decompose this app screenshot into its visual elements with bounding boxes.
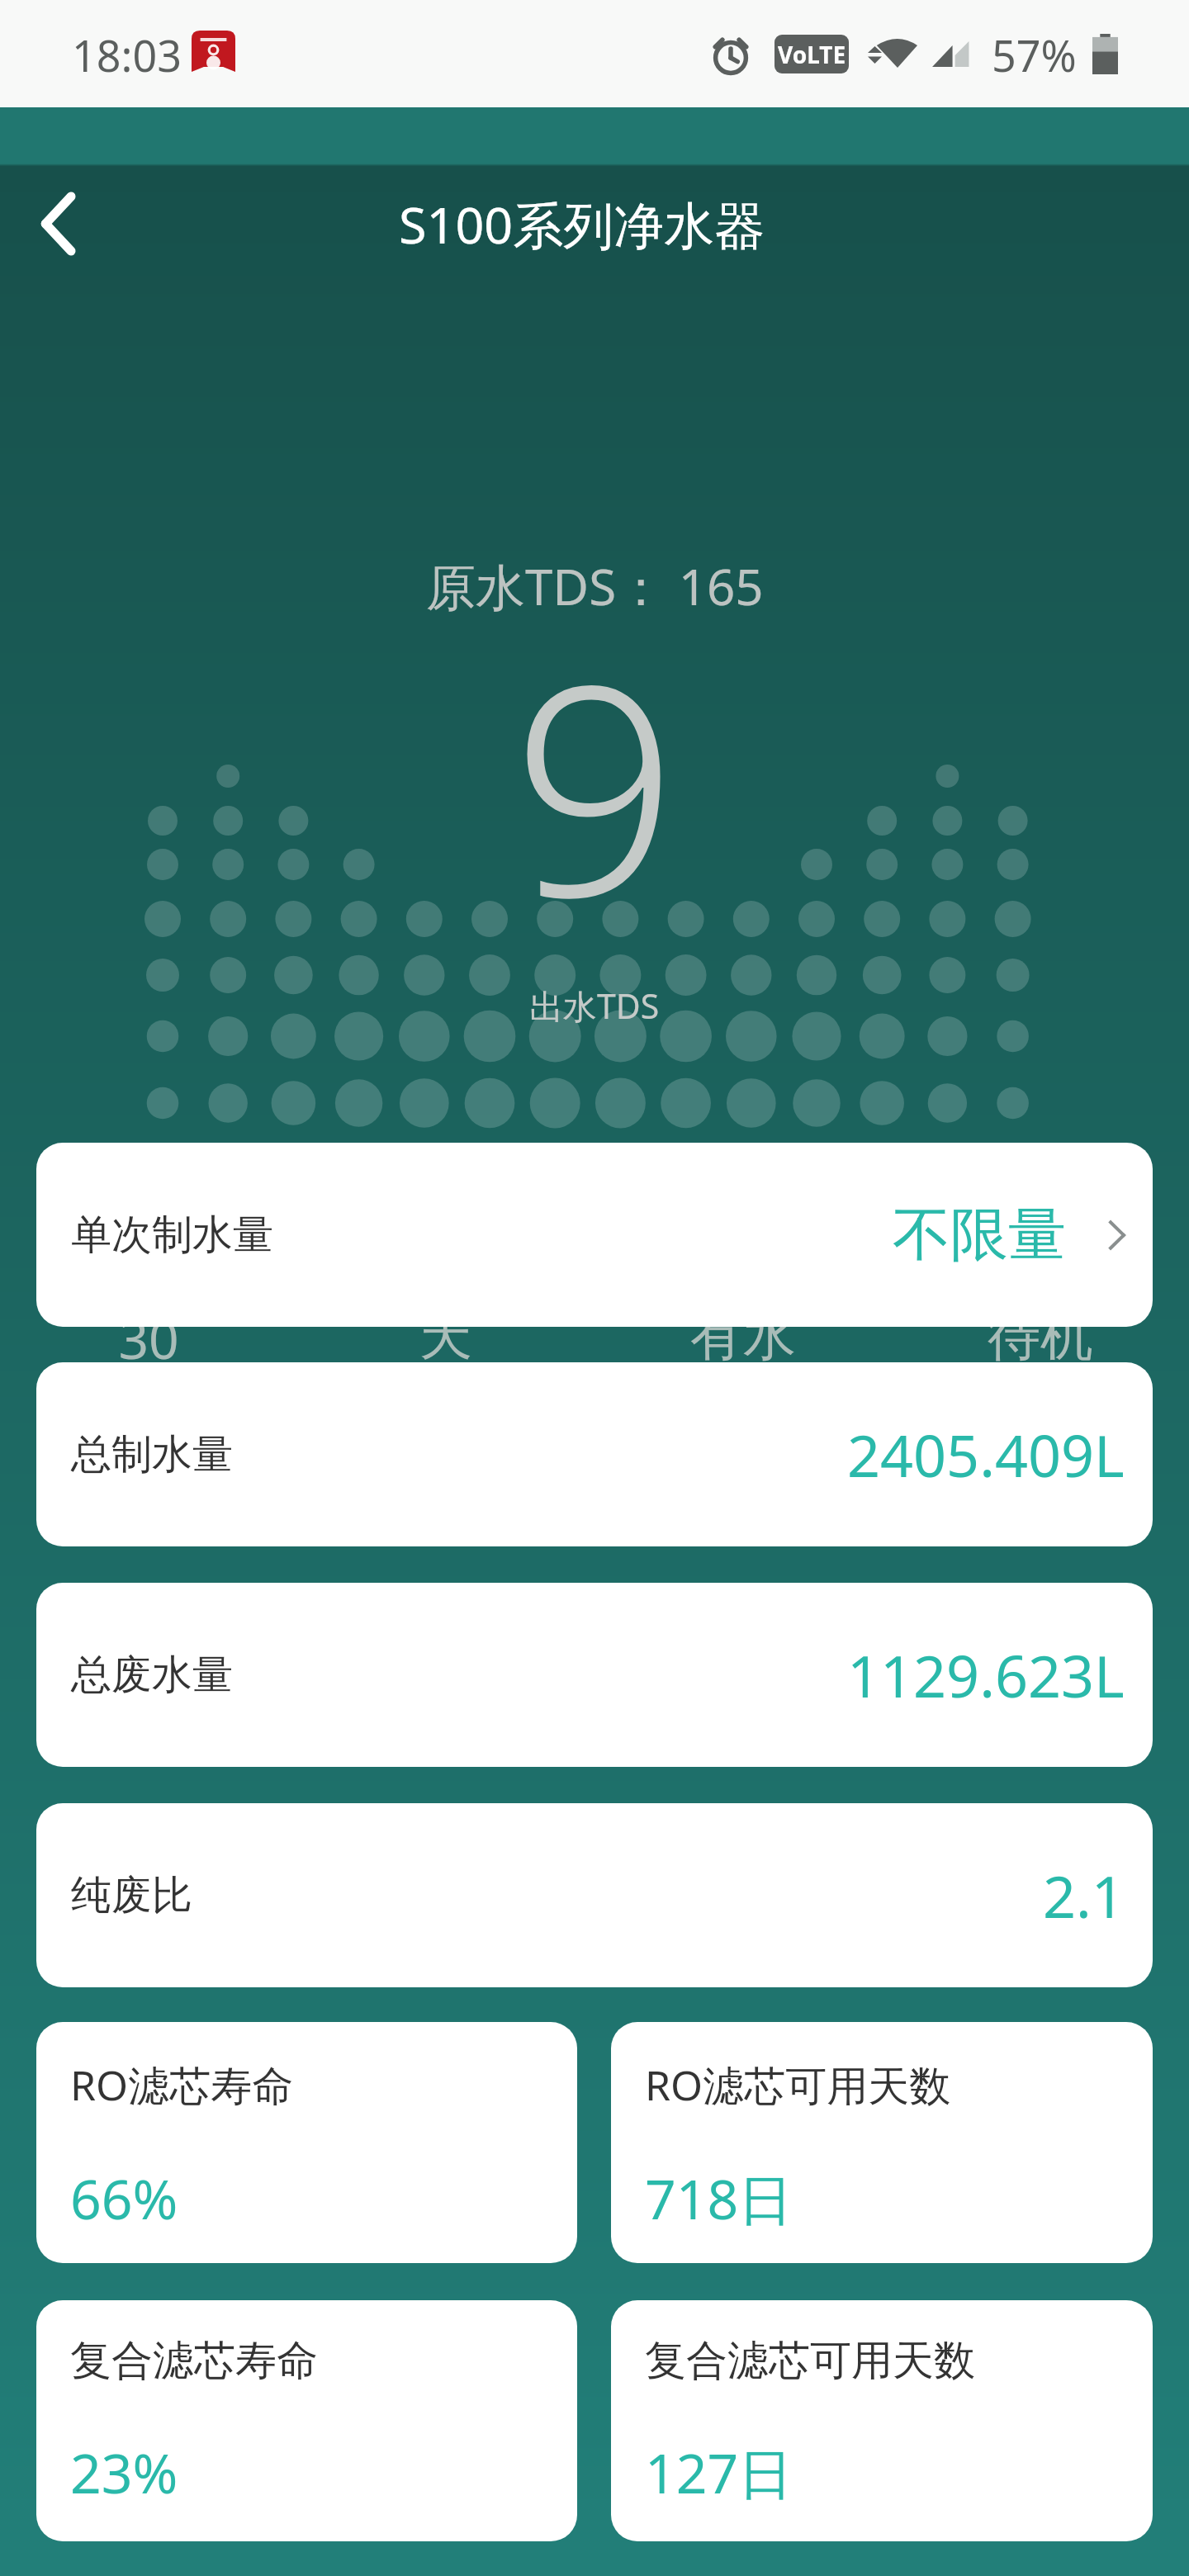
button[interactable]: 单次制水量 xyxy=(36,1143,1153,1327)
staticText: 1129.623L xyxy=(847,1636,1125,1714)
staticText: 原水TDS： 165 xyxy=(426,552,764,620)
button[interactable]: Back xyxy=(10,176,106,272)
staticText: 718日 xyxy=(645,2161,793,2235)
staticText: 总制水量 xyxy=(71,1429,233,1480)
staticText: 23% xyxy=(70,2435,178,2509)
staticText: 复合滤芯可用天数 xyxy=(645,2335,975,2387)
staticText: 2405.409L xyxy=(847,1415,1125,1494)
staticText: 单次制水量 xyxy=(71,1210,273,1261)
staticText: 出水TDS xyxy=(529,983,660,1029)
staticText: 2.1 xyxy=(1043,1856,1125,1934)
staticText: 18:03 xyxy=(72,26,182,84)
staticText: 纯废比 xyxy=(71,1870,192,1921)
staticText: VoLTE xyxy=(778,39,846,70)
button[interactable]: RO滤芯寿命 xyxy=(36,2022,577,2263)
staticText: 57% xyxy=(992,26,1077,84)
staticText: 总废水量 xyxy=(71,1650,233,1701)
staticText: 66% xyxy=(70,2161,178,2235)
button[interactable]: 总废水量 xyxy=(36,1583,1153,1767)
staticText: 天 xyxy=(419,1303,472,1370)
staticText: 9 xyxy=(512,585,678,981)
staticText: S100系列净水器 xyxy=(399,190,765,258)
staticText: 待机 xyxy=(988,1303,1093,1370)
staticText: 有水 xyxy=(690,1303,796,1370)
staticText: 127日 xyxy=(645,2435,793,2509)
staticText: RO滤芯寿命 xyxy=(70,2057,294,2113)
staticText: RO滤芯可用天数 xyxy=(645,2057,951,2113)
staticText: 复合滤芯寿命 xyxy=(70,2335,318,2387)
button[interactable]: 复合滤芯可用天数 xyxy=(611,2300,1153,2541)
staticText: 不限量 xyxy=(893,1199,1066,1271)
button[interactable]: 纯废比 xyxy=(36,1803,1153,1987)
staticText: 30 xyxy=(118,1303,179,1375)
button[interactable]: 总制水量 xyxy=(36,1362,1153,1546)
button[interactable]: RO滤芯可用天数 xyxy=(611,2022,1153,2263)
button[interactable]: 复合滤芯寿命 xyxy=(36,2300,577,2541)
